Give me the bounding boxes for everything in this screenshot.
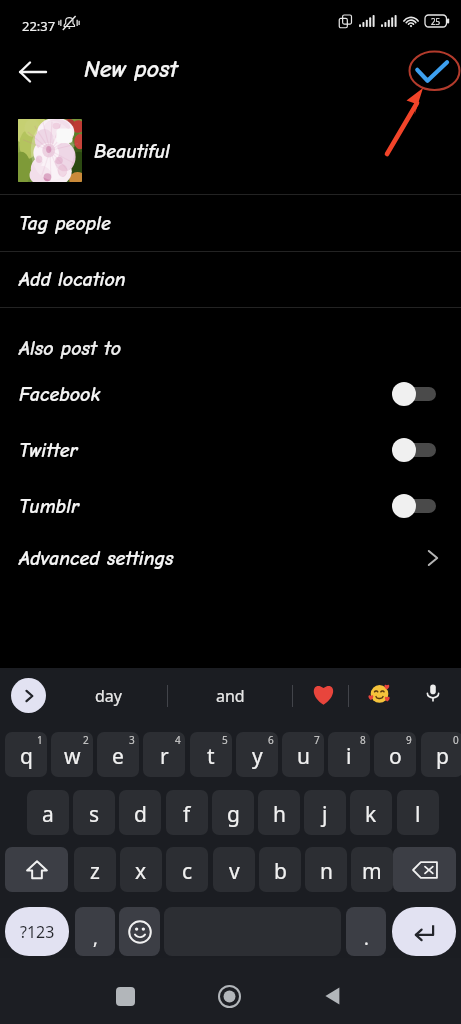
- staticText: Beautiful: [94, 140, 170, 163]
- button[interactable]: o: [374, 732, 416, 777]
- staticText: y: [252, 742, 263, 771]
- button[interactable]: Voice input: [418, 678, 448, 708]
- staticText: w: [64, 742, 81, 771]
- button[interactable]: Shift: [5, 847, 68, 892]
- staticText: v: [229, 857, 240, 886]
- button[interactable]: Beautiful: [0, 102, 461, 195]
- button[interactable]: ?123: [5, 907, 69, 956]
- button[interactable]: Back: [11, 50, 55, 94]
- button[interactable]: n: [305, 847, 347, 892]
- button[interactable]: e: [97, 732, 139, 777]
- button[interactable]: d: [119, 790, 161, 835]
- button[interactable]: m: [351, 847, 393, 892]
- button[interactable]: .: [346, 907, 386, 956]
- button[interactable]: Emoji keyboard: [119, 907, 160, 956]
- staticText: 5: [222, 733, 228, 747]
- button[interactable]: Heart emoji: [306, 676, 341, 711]
- button[interactable]: g: [212, 790, 254, 835]
- button[interactable]: w: [51, 732, 93, 777]
- staticText: 9: [406, 733, 412, 747]
- staticText: l: [415, 800, 421, 829]
- button[interactable]: q: [5, 732, 47, 777]
- button[interactable]: Back: [313, 976, 353, 1016]
- button[interactable]: f: [166, 790, 208, 835]
- staticText: m: [362, 857, 382, 886]
- staticText: Facebook: [19, 383, 101, 406]
- button[interactable]: j: [304, 790, 346, 835]
- staticText: a: [42, 800, 54, 829]
- button[interactable]: Tumblr: [0, 478, 461, 534]
- staticText: t: [207, 742, 215, 771]
- button[interactable]: k: [350, 790, 392, 835]
- button[interactable]: Enter: [392, 907, 456, 956]
- staticText: ,: [93, 926, 98, 951]
- button[interactable]: and: [184, 678, 276, 714]
- button[interactable]: Backspace: [393, 847, 456, 892]
- staticText: k: [365, 800, 377, 829]
- staticText: Tumblr: [19, 495, 79, 518]
- button[interactable]: h: [258, 790, 300, 835]
- button[interactable]: More suggestions: [11, 678, 46, 713]
- button[interactable]: y: [236, 732, 278, 777]
- staticText: z: [90, 857, 100, 886]
- staticText: and: [216, 685, 245, 707]
- button[interactable]: s: [73, 790, 115, 835]
- staticText: o: [389, 742, 402, 771]
- staticText: 8: [360, 733, 366, 747]
- staticText: j: [322, 800, 328, 829]
- staticText: Advanced settings: [19, 547, 174, 570]
- button[interactable]: v: [213, 847, 255, 892]
- staticText: 7: [314, 733, 320, 747]
- staticText: 0: [453, 733, 459, 747]
- button[interactable]: Recent apps: [105, 976, 145, 1016]
- staticText: p: [436, 742, 449, 771]
- staticText: Add location: [19, 268, 126, 291]
- button[interactable]: Smiling face emoji: [364, 678, 394, 708]
- button[interactable]: x: [120, 847, 162, 892]
- button[interactable]: ,: [75, 907, 115, 956]
- button[interactable]: p: [421, 732, 461, 777]
- button[interactable]: i: [328, 732, 370, 777]
- button[interactable]: Add location: [0, 252, 461, 307]
- staticText: Tag people: [19, 212, 111, 235]
- button[interactable]: c: [166, 847, 208, 892]
- staticText: e: [112, 742, 124, 771]
- staticText: h: [273, 800, 286, 829]
- staticText: New post: [84, 55, 178, 83]
- staticText: d: [134, 800, 147, 829]
- button[interactable]: day: [62, 678, 154, 714]
- button[interactable]: u: [282, 732, 324, 777]
- staticText: 3: [129, 733, 135, 747]
- staticText: n: [320, 857, 333, 886]
- staticText: c: [182, 857, 193, 886]
- staticText: q: [20, 742, 33, 771]
- button[interactable]: t: [190, 732, 232, 777]
- staticText: 25: [431, 16, 441, 27]
- staticText: 1: [37, 733, 43, 747]
- staticText: b: [274, 857, 287, 886]
- staticText: ?123: [20, 921, 55, 943]
- button[interactable]: b: [259, 847, 301, 892]
- button[interactable]: a: [27, 790, 69, 835]
- staticText: x: [135, 857, 147, 886]
- staticText: Twitter: [19, 439, 78, 462]
- staticText: i: [346, 742, 352, 771]
- staticText: r: [160, 742, 169, 771]
- staticText: 6: [268, 733, 274, 747]
- button[interactable]: z: [74, 847, 116, 892]
- button[interactable]: Home: [209, 976, 249, 1016]
- staticText: u: [297, 742, 310, 771]
- button[interactable]: r: [143, 732, 185, 777]
- button[interactable]: Share post: [411, 49, 453, 91]
- button[interactable]: Advanced settings: [0, 530, 461, 586]
- button[interactable]: Twitter: [0, 422, 461, 478]
- staticText: .: [364, 926, 369, 951]
- staticText: g: [227, 800, 240, 829]
- button[interactable]: Tag people: [0, 195, 461, 251]
- button[interactable]: Facebook: [0, 366, 461, 422]
- button[interactable]: l: [397, 790, 439, 835]
- staticText: day: [95, 685, 122, 707]
- staticText: 4: [175, 733, 181, 747]
- staticText: Also post to: [19, 337, 121, 360]
